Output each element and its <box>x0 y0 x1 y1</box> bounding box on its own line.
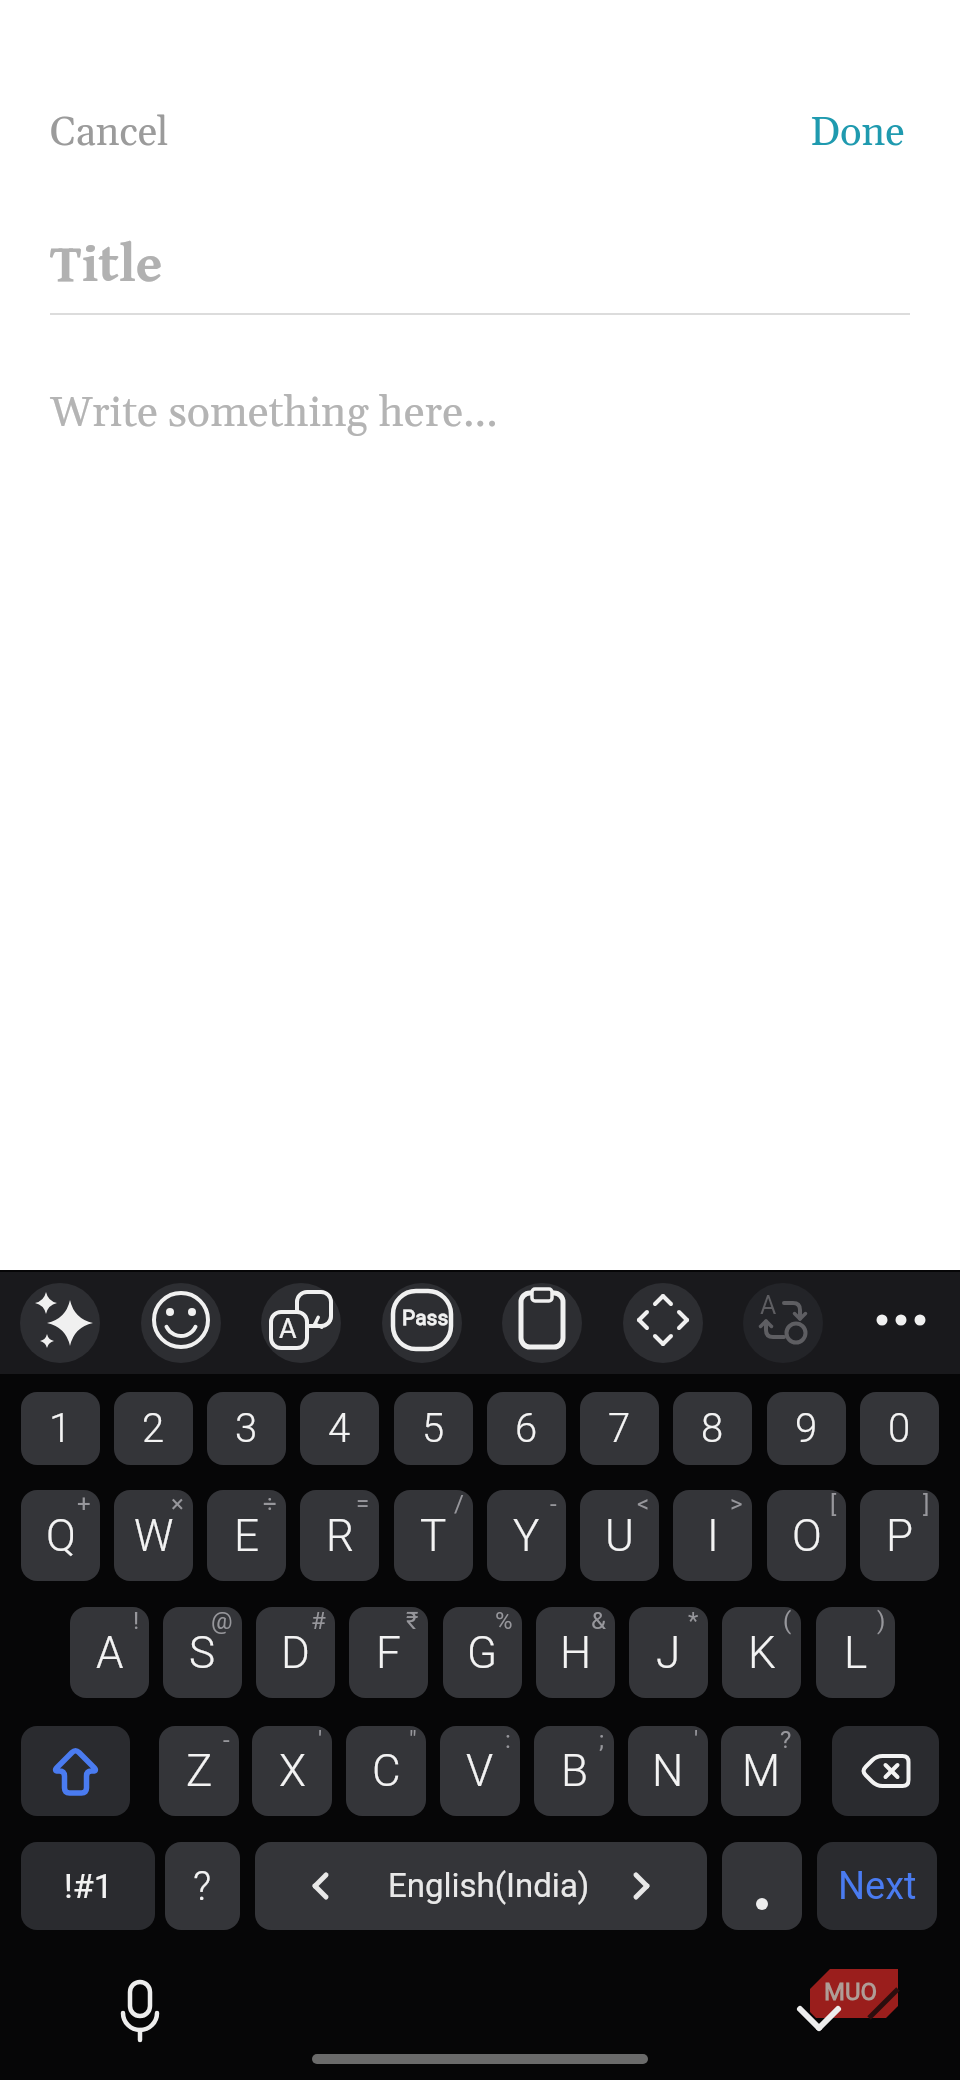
staticText: 9 <box>795 1405 818 1452</box>
button[interactable]: D <box>256 1607 335 1698</box>
staticText: W <box>134 1510 174 1562</box>
staticText: C <box>372 1745 401 1797</box>
button[interactable]: N <box>628 1726 708 1816</box>
button[interactable]: H <box>536 1607 615 1698</box>
staticText: L <box>844 1627 868 1679</box>
staticText: Y <box>513 1510 540 1562</box>
staticText: ; <box>599 1726 605 1754</box>
button[interactable]: 2 <box>114 1392 193 1465</box>
button[interactable] <box>502 1283 582 1363</box>
button[interactable]: Cancel <box>30 96 189 171</box>
staticText: × <box>171 1490 184 1518</box>
button[interactable]: L <box>816 1607 895 1698</box>
button[interactable] <box>382 1283 462 1363</box>
staticText: !#1 <box>64 1866 113 1906</box>
button[interactable]: 6 <box>487 1392 566 1465</box>
staticText: 2 <box>142 1405 165 1452</box>
staticText: ( <box>783 1607 792 1635</box>
staticText: English(India) <box>388 1866 590 1905</box>
button[interactable]: U <box>580 1490 659 1581</box>
button[interactable]: Done <box>790 96 925 171</box>
staticText: ' <box>694 1726 699 1754</box>
staticText: = <box>356 1490 370 1518</box>
staticText: M <box>742 1745 781 1797</box>
button[interactable]: A <box>70 1607 149 1698</box>
staticText: ? <box>193 1863 212 1910</box>
staticText: A <box>760 1291 777 1320</box>
button[interactable] <box>261 1283 341 1363</box>
button[interactable] <box>20 1283 100 1363</box>
button[interactable] <box>722 1842 802 1930</box>
staticText: G <box>467 1627 498 1679</box>
button[interactable]: 5 <box>394 1392 473 1465</box>
staticText: H <box>560 1627 592 1679</box>
button[interactable] <box>832 1726 939 1816</box>
button[interactable]: G <box>443 1607 522 1698</box>
staticText: [ <box>830 1490 837 1518</box>
button[interactable]: 0 <box>860 1392 939 1465</box>
button[interactable]: V <box>440 1726 520 1816</box>
button[interactable]: 4 <box>300 1392 379 1465</box>
button[interactable]: 8 <box>673 1392 752 1465</box>
staticText: A <box>279 1313 297 1345</box>
staticText: % <box>495 1607 513 1635</box>
button[interactable] <box>141 1283 221 1363</box>
button[interactable]: Y <box>487 1490 566 1581</box>
staticText: S <box>189 1627 216 1679</box>
staticText: 6 <box>515 1405 538 1452</box>
staticText: R <box>326 1510 354 1562</box>
staticText: ) <box>877 1607 886 1635</box>
button[interactable] <box>21 1726 130 1816</box>
staticText: T <box>420 1510 447 1562</box>
button[interactable]: 9 <box>767 1392 846 1465</box>
staticText: - <box>223 1726 230 1754</box>
staticText: P <box>886 1510 914 1562</box>
button[interactable]: K <box>722 1607 801 1698</box>
staticText: # <box>311 1607 326 1635</box>
button[interactable]: R <box>300 1490 379 1581</box>
staticText: Pass <box>402 1306 449 1331</box>
staticText: D <box>281 1627 310 1679</box>
button[interactable]: X <box>252 1726 332 1816</box>
staticText: / <box>454 1490 464 1518</box>
staticText: Z <box>186 1745 213 1797</box>
button[interactable]: 1 <box>21 1392 100 1465</box>
button[interactable]: Q <box>21 1490 100 1581</box>
staticText: 8 <box>701 1405 724 1452</box>
button[interactable]: 7 <box>580 1392 659 1465</box>
staticText: 0 <box>888 1405 911 1452</box>
staticText: ₹ <box>406 1607 419 1635</box>
button[interactable]: E <box>207 1490 286 1581</box>
button[interactable]: ? <box>165 1842 240 1930</box>
button[interactable]: W <box>114 1490 193 1581</box>
staticText: ? <box>780 1726 792 1754</box>
staticText: N <box>652 1745 684 1797</box>
button[interactable]: Z <box>159 1726 239 1816</box>
button[interactable]: !#1 <box>21 1842 155 1930</box>
staticText: V <box>466 1745 494 1797</box>
staticText: ] <box>923 1490 930 1518</box>
staticText: ' <box>318 1726 323 1754</box>
button[interactable] <box>255 1842 707 1930</box>
staticText: Done <box>810 108 905 159</box>
button[interactable]: 3 <box>207 1392 286 1465</box>
staticText: U <box>605 1510 634 1562</box>
button[interactable]: M <box>721 1726 801 1816</box>
button[interactable] <box>743 1283 823 1363</box>
button[interactable] <box>623 1283 703 1363</box>
staticText: < <box>637 1490 650 1518</box>
staticText: 7 <box>608 1405 631 1452</box>
button[interactable]: J <box>629 1607 708 1698</box>
button[interactable]: F <box>349 1607 428 1698</box>
staticText: Cancel <box>50 108 169 159</box>
button[interactable]: S <box>163 1607 242 1698</box>
button[interactable]: Next <box>817 1842 937 1930</box>
button[interactable]: O <box>767 1490 846 1581</box>
button[interactable]: I <box>673 1490 752 1581</box>
button[interactable]: B <box>534 1726 614 1816</box>
staticText: B <box>561 1745 588 1797</box>
button[interactable]: T <box>394 1490 473 1581</box>
staticText: E <box>234 1510 260 1562</box>
button[interactable]: P <box>860 1490 939 1581</box>
button[interactable]: C <box>346 1726 426 1816</box>
